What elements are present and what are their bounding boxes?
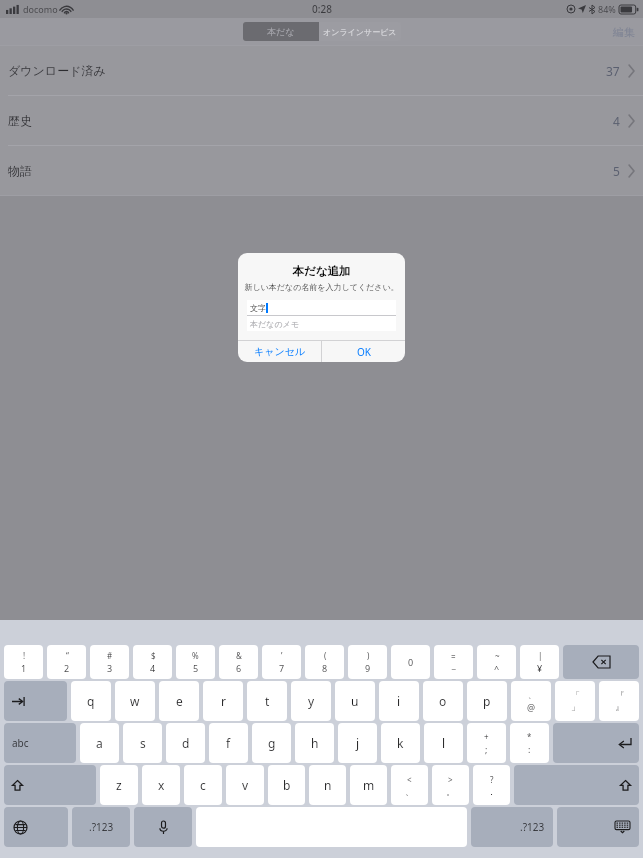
button[interactable]: Change language xyxy=(4,807,68,847)
button[interactable]: Shift xyxy=(514,765,639,805)
staticText: ) xyxy=(367,650,370,661)
button[interactable]: Return xyxy=(553,723,639,763)
staticText: abc xyxy=(12,736,29,750)
button[interactable]: 0 xyxy=(391,645,430,679)
staticText: 4 xyxy=(150,662,156,674)
button[interactable]: i xyxy=(379,681,419,721)
button[interactable]: c xyxy=(184,765,222,805)
button[interactable]: キャンセル xyxy=(238,341,321,362)
button[interactable]: g xyxy=(252,723,291,763)
button[interactable]: * xyxy=(510,723,549,763)
button[interactable]: m xyxy=(350,765,387,805)
button[interactable]: e xyxy=(159,681,199,721)
staticText: b xyxy=(283,777,291,793)
staticText: l xyxy=(442,735,446,751)
button[interactable]: 「 xyxy=(555,681,595,721)
button[interactable]: p xyxy=(467,681,507,721)
staticText: $ xyxy=(151,650,156,661)
staticText: m xyxy=(363,777,375,793)
button[interactable]: 編集 xyxy=(613,25,635,39)
button[interactable]: = xyxy=(434,645,473,679)
button[interactable]: # xyxy=(90,645,129,679)
button[interactable]: ! xyxy=(4,645,43,679)
staticText: 『 xyxy=(616,690,624,700)
button[interactable]: + xyxy=(467,723,506,763)
button[interactable]: Tab xyxy=(4,681,67,721)
button[interactable]: z xyxy=(100,765,138,805)
button[interactable]: Dictation xyxy=(134,807,192,847)
button[interactable]: h xyxy=(295,723,334,763)
staticText: 歴史 xyxy=(8,113,32,128)
button[interactable]: ’ xyxy=(262,645,301,679)
button[interactable]: r xyxy=(203,681,243,721)
button[interactable]: % xyxy=(176,645,215,679)
button[interactable]: ( xyxy=(305,645,344,679)
button[interactable]: abc xyxy=(4,723,76,763)
button[interactable]: n xyxy=(309,765,346,805)
staticText: 3 xyxy=(107,662,113,674)
button[interactable]: 歴史 xyxy=(0,95,643,145)
button[interactable]: o xyxy=(423,681,463,721)
staticText: z xyxy=(116,777,122,793)
button[interactable]: Shift xyxy=(4,765,96,805)
staticText: k xyxy=(397,735,404,751)
button[interactable]: d xyxy=(166,723,205,763)
button[interactable]: j xyxy=(338,723,377,763)
staticText: w xyxy=(130,693,140,709)
staticText: ^ xyxy=(494,662,500,674)
button[interactable]: k xyxy=(381,723,420,763)
button[interactable]: .?123 xyxy=(471,807,553,847)
button[interactable]: f xyxy=(209,723,248,763)
button[interactable]: l xyxy=(424,723,463,763)
staticText: o xyxy=(439,693,447,709)
button[interactable]: | xyxy=(520,645,559,679)
button[interactable]: < xyxy=(391,765,428,805)
button[interactable]: u xyxy=(335,681,375,721)
staticText: 9 xyxy=(365,662,371,674)
button[interactable]: w xyxy=(115,681,155,721)
button[interactable]: b xyxy=(268,765,305,805)
button[interactable]: $ xyxy=(133,645,172,679)
button[interactable]: t xyxy=(247,681,287,721)
staticText: h xyxy=(311,735,319,751)
staticText: 、 xyxy=(405,786,414,797)
staticText: a xyxy=(96,735,103,751)
staticText: y xyxy=(308,693,315,709)
button[interactable]: ~ xyxy=(477,645,516,679)
staticText: x xyxy=(158,777,165,793)
staticText: 0 xyxy=(408,656,414,668)
button[interactable]: ? xyxy=(473,765,510,805)
button[interactable]: > xyxy=(432,765,469,805)
staticText: 「 xyxy=(572,690,580,700)
staticText: ( xyxy=(324,650,327,661)
button[interactable]: 『 xyxy=(599,681,639,721)
button[interactable]: 物語 xyxy=(0,145,643,195)
button[interactable]: q xyxy=(71,681,111,721)
button[interactable]: OK xyxy=(322,341,405,362)
button[interactable]: 本だな xyxy=(243,22,319,41)
button[interactable]: x xyxy=(142,765,180,805)
button[interactable]: & xyxy=(219,645,258,679)
button[interactable]: 、 xyxy=(511,681,551,721)
button[interactable]: オンラインサービス xyxy=(319,22,401,41)
staticText: % xyxy=(192,650,199,661)
staticText: 84% xyxy=(598,3,616,15)
button[interactable]: Backspace xyxy=(563,645,639,679)
staticText: 本だな追加 xyxy=(238,264,405,278)
button[interactable]: Hide keyboard xyxy=(557,807,639,847)
button[interactable]: v xyxy=(226,765,264,805)
button[interactable]: y xyxy=(291,681,331,721)
staticText: & xyxy=(236,650,242,661)
button[interactable]: ) xyxy=(348,645,387,679)
staticText: 』 xyxy=(615,701,624,712)
button[interactable]: .?123 xyxy=(72,807,130,847)
button[interactable]: s xyxy=(123,723,162,763)
button[interactable]: ダウンロード済み xyxy=(0,46,643,95)
staticText: = xyxy=(451,651,456,662)
staticText: ¥ xyxy=(537,662,543,674)
button[interactable]: “ xyxy=(47,645,86,679)
button[interactable]: a xyxy=(80,723,119,763)
staticText: : xyxy=(528,743,531,755)
staticText: 新しい本だなの名前を入力してください。 xyxy=(238,282,405,292)
